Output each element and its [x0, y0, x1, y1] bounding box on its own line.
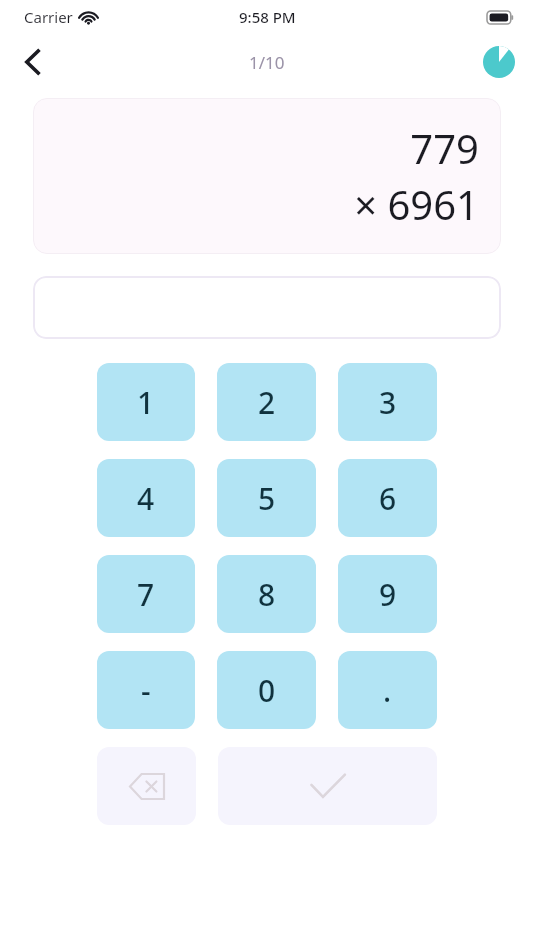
button[interactable]: Answer input — [33, 276, 501, 339]
staticText: 779 — [410, 121, 479, 175]
button[interactable]: 2 — [217, 363, 316, 441]
staticText: 8 — [258, 574, 276, 615]
staticText: . — [383, 670, 392, 711]
staticText: 9:58 PM — [239, 7, 296, 27]
button[interactable]: . — [338, 651, 437, 729]
staticText: 1 — [137, 382, 155, 423]
button[interactable]: 9 — [338, 555, 437, 633]
button[interactable]: 8 — [217, 555, 316, 633]
staticText: Carrier — [24, 7, 73, 27]
staticText: 3 — [379, 382, 397, 423]
button[interactable]: 0 — [217, 651, 316, 729]
button[interactable]: 6 — [338, 459, 437, 537]
button[interactable]: 5 — [217, 459, 316, 537]
staticText: 0 — [258, 670, 276, 711]
staticText: 6 — [379, 478, 397, 519]
staticText: 4 — [137, 478, 155, 519]
staticText: 9 — [379, 574, 397, 615]
button[interactable]: 4 — [97, 459, 195, 537]
button[interactable]: Backspace — [97, 747, 196, 825]
button[interactable]: Progress — [481, 44, 517, 80]
button[interactable]: Back — [10, 40, 54, 84]
staticText: × 6961 — [354, 177, 479, 231]
staticText: 7 — [137, 574, 155, 615]
staticText: 5 — [258, 478, 276, 519]
staticText: 1/10 — [249, 51, 285, 74]
button[interactable]: 7 — [97, 555, 195, 633]
staticText: 2 — [258, 382, 276, 423]
button[interactable]: - — [97, 651, 195, 729]
button[interactable]: 3 — [338, 363, 437, 441]
staticText: - — [141, 670, 151, 711]
button[interactable]: 1 — [97, 363, 195, 441]
